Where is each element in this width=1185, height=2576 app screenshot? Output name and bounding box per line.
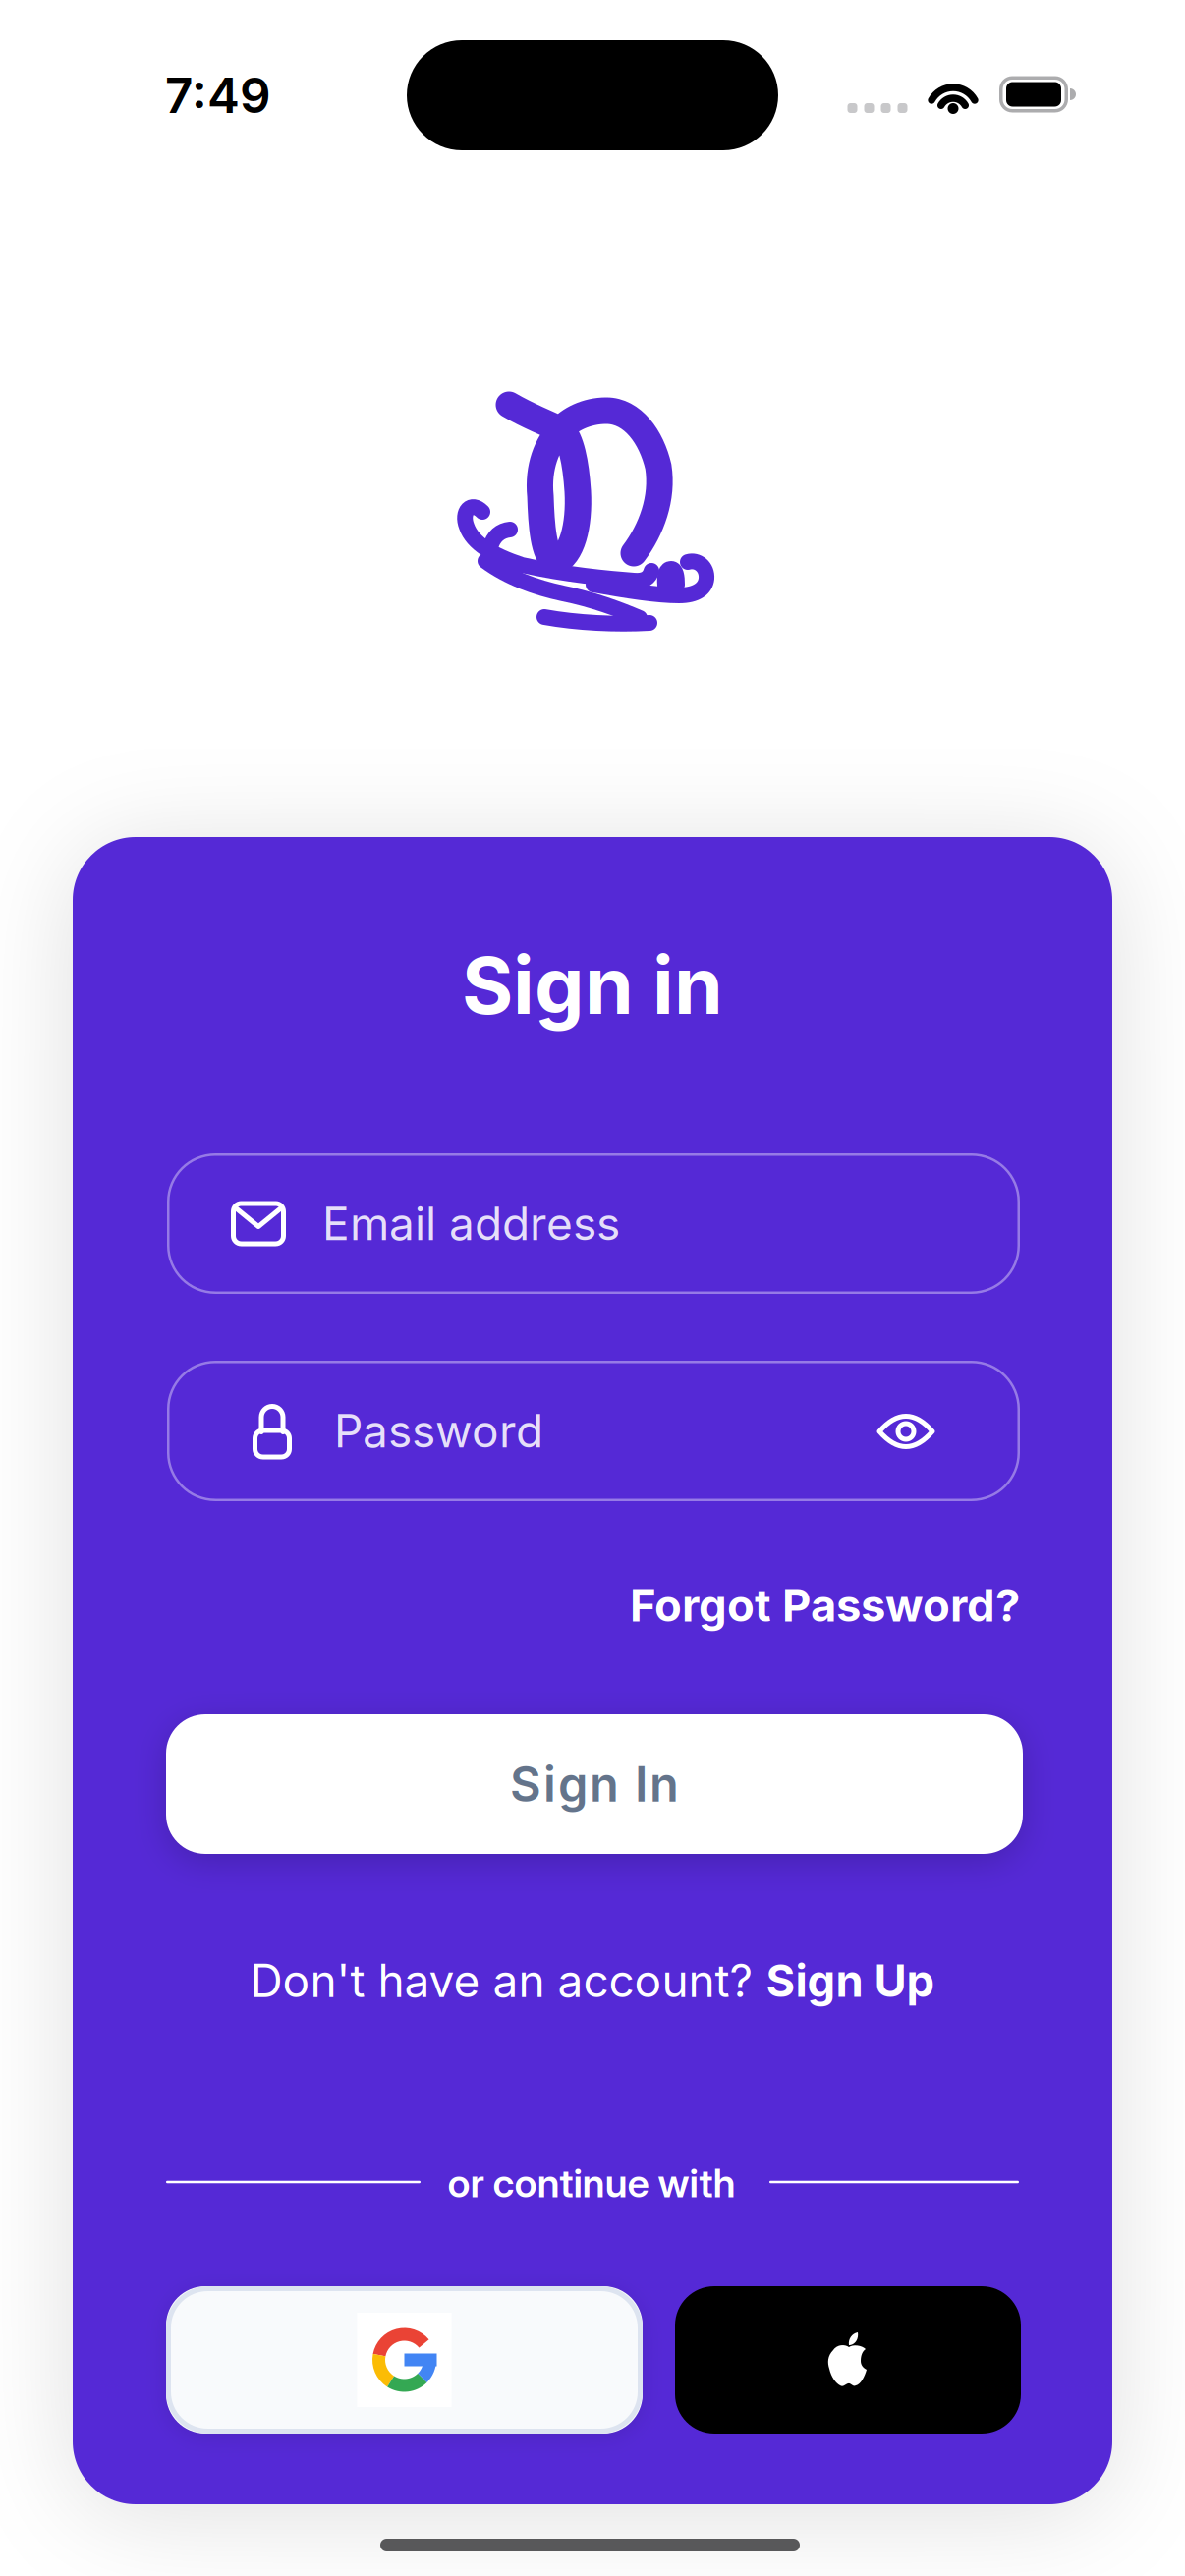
staticText: Password	[334, 1404, 543, 1458]
staticText: Sign In	[510, 1755, 679, 1813]
button[interactable]: Forgot Password?	[630, 1578, 1020, 1632]
button[interactable]: Password	[167, 1361, 1020, 1501]
staticText: 7:49	[165, 66, 271, 125]
button[interactable]: Email address	[167, 1153, 1020, 1294]
button[interactable]: Sign in with Apple	[675, 2286, 1021, 2434]
staticText: Don't have an account?	[250, 1953, 753, 2008]
staticText: Email address	[322, 1196, 620, 1251]
staticText: Sign in	[462, 938, 723, 1033]
staticText: or continue with	[448, 2159, 735, 2207]
button[interactable]: Sign Up	[766, 1954, 935, 2008]
staticText: Sign Up	[766, 1954, 935, 2008]
button[interactable]: Show password	[876, 1411, 935, 1452]
staticText: Forgot Password?	[630, 1578, 1020, 1632]
button[interactable]: Sign in with Google	[166, 2286, 643, 2434]
button[interactable]: Sign In	[166, 1714, 1023, 1854]
